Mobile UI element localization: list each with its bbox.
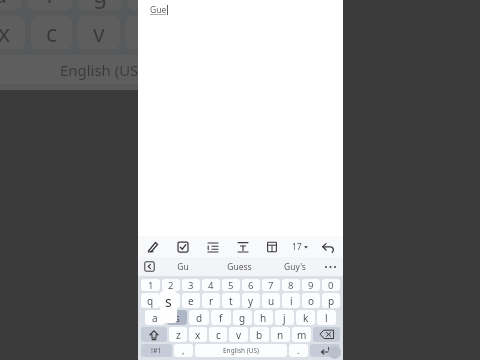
button[interactable]: g — [78, 0, 122, 10]
button[interactable]: m — [292, 327, 311, 342]
button[interactable]: r — [202, 293, 220, 308]
button[interactable]: g — [233, 310, 252, 325]
button[interactable]: a — [145, 310, 165, 325]
button[interactable]: e — [182, 293, 200, 308]
button[interactable]: p — [322, 293, 340, 308]
staticText: l — [325, 311, 328, 325]
button[interactable]: Checklist — [173, 237, 193, 257]
staticText: e — [188, 294, 194, 308]
button[interactable]: Draw — [143, 237, 163, 257]
button[interactable]: v — [229, 327, 248, 342]
staticText: i — [290, 294, 293, 308]
button[interactable]: 4 — [202, 279, 220, 291]
button[interactable]: Insert table — [262, 237, 282, 257]
staticText: n — [277, 328, 284, 342]
button[interactable]: Undo — [318, 237, 338, 257]
button[interactable]: 6 — [242, 279, 260, 291]
button[interactable]: 2 — [162, 279, 180, 291]
button[interactable]: 3 — [182, 279, 200, 291]
button[interactable]: English (US) — [0, 55, 207, 84]
button[interactable]: English (US) — [195, 344, 287, 357]
button[interactable]: x — [189, 327, 207, 342]
staticText: Guy's — [284, 261, 306, 273]
button[interactable]: j — [275, 310, 294, 325]
button[interactable]: f — [211, 310, 231, 325]
button[interactable]: l — [317, 310, 336, 325]
button[interactable]: 8 — [282, 279, 300, 291]
staticText: q — [147, 294, 154, 308]
button[interactable]: 9 — [302, 279, 320, 291]
button[interactable]: t — [222, 293, 240, 308]
button[interactable]: z — [169, 327, 187, 342]
button[interactable]: h — [254, 310, 273, 325]
staticText: English (US) — [223, 346, 260, 355]
button[interactable]: 1 — [141, 279, 160, 291]
staticText: z — [176, 328, 181, 342]
button[interactable]: Voice input — [328, 346, 341, 359]
button[interactable]: y — [242, 293, 260, 308]
button[interactable]: Shift — [141, 327, 167, 342]
staticText: 3 — [188, 279, 194, 291]
button[interactable]: f — [28, 0, 72, 10]
button[interactable]: Indent — [203, 237, 223, 257]
button[interactable]: w — [162, 293, 180, 308]
staticText: 9 — [308, 279, 314, 291]
button[interactable]: c — [209, 327, 227, 342]
staticText: w — [167, 294, 175, 308]
staticText: 0 — [328, 279, 334, 291]
button[interactable]: Backspace — [313, 327, 340, 342]
staticText: b — [256, 328, 263, 342]
button[interactable]: 7 — [262, 279, 280, 291]
button[interactable]: s — [167, 310, 187, 325]
staticText: d — [196, 311, 203, 325]
button[interactable]: d — [0, 0, 22, 10]
button[interactable]: u — [262, 293, 280, 308]
staticText: , — [182, 344, 185, 357]
button[interactable]: k — [296, 310, 315, 325]
staticText: p — [328, 294, 335, 308]
button[interactable]: Enter — [310, 344, 340, 357]
button[interactable]: 17 — [292, 241, 308, 253]
button[interactable]: q — [141, 293, 160, 308]
button[interactable]: . — [289, 344, 308, 357]
button[interactable]: b — [126, 16, 168, 49]
button[interactable]: Guess — [211, 257, 267, 276]
button[interactable]: x — [0, 16, 25, 49]
button[interactable]: Gu — [155, 257, 211, 276]
button[interactable]: b — [250, 327, 269, 342]
button[interactable]: h — [128, 0, 172, 10]
button[interactable]: 0 — [322, 279, 340, 291]
button[interactable]: Guy's — [267, 257, 323, 276]
staticText: t — [229, 294, 233, 308]
button[interactable]: More suggestions — [323, 265, 337, 269]
staticText: v — [236, 328, 242, 342]
staticText: Guess — [227, 261, 252, 273]
button[interactable]: n — [271, 327, 290, 342]
button[interactable]: , — [174, 344, 193, 357]
button[interactable]: Text format — [233, 237, 253, 257]
button[interactable]: Symbols — [141, 344, 172, 357]
button[interactable]: 5 — [222, 279, 240, 291]
staticText: f — [46, 0, 54, 9]
staticText: 5 — [228, 279, 234, 291]
button[interactable]: i — [282, 293, 300, 308]
button[interactable]: v — [78, 16, 120, 49]
button[interactable]: c — [31, 16, 72, 49]
button[interactable]: d — [189, 310, 209, 325]
button[interactable]: o — [302, 293, 320, 308]
button[interactable]: Previous — [144, 261, 155, 272]
